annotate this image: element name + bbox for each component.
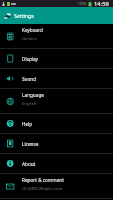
staticText: 14:59 [94,0,109,7]
staticText: Report & comment [22,177,64,183]
staticText: Sound [22,76,37,82]
staticText: Settings [14,12,34,19]
staticText: Display [22,56,38,62]
button[interactable]: Keyboard [0,24,113,49]
staticText: English [22,101,37,107]
button[interactable]: Language [0,89,113,114]
staticText: Keyboard [22,27,43,33]
staticText: Generic [22,36,38,42]
button[interactable]: About [0,154,113,174]
staticText: About [22,161,36,167]
button[interactable]: Report & comment [0,174,113,199]
button[interactable]: Display [0,49,113,69]
staticText: Language [22,92,44,98]
staticText: Help [22,121,33,127]
button[interactable]: License [0,134,113,154]
button[interactable]: Help [0,114,113,134]
button[interactable]: Sound [0,69,113,89]
staticText: 100% [78,2,87,6]
staticText: License [22,141,39,147]
staticText: OC@KIS-Mobile.com [22,186,63,192]
